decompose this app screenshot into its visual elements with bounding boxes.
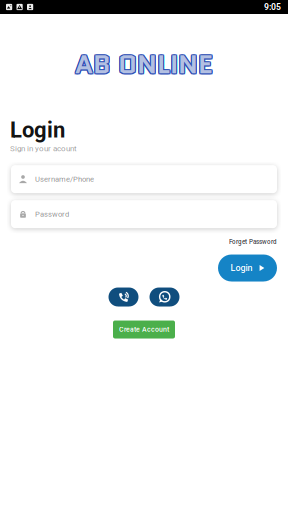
staticText: AB ONLINE bbox=[76, 45, 214, 83]
staticText: AB ONLINE bbox=[75, 46, 213, 84]
staticText: AB ONLINE bbox=[75, 45, 213, 83]
staticText: Login bbox=[10, 117, 65, 143]
button[interactable]: Create Account bbox=[113, 320, 175, 338]
staticText: 9:05 bbox=[264, 2, 281, 12]
staticText: AB ONLINE bbox=[76, 44, 214, 82]
button[interactable]: WhatsApp bbox=[149, 287, 179, 306]
staticText: Create Account bbox=[119, 325, 169, 333]
button[interactable]: Password bbox=[11, 200, 277, 228]
staticText: Username/Phone bbox=[35, 175, 94, 184]
button[interactable]: Forget Password bbox=[226, 236, 280, 247]
button[interactable]: Call bbox=[108, 287, 138, 306]
staticText: AB ONLINE bbox=[74, 44, 212, 82]
button[interactable]: Login bbox=[218, 254, 277, 281]
staticText: Login bbox=[230, 263, 252, 273]
button[interactable]: Username/Phone bbox=[11, 165, 277, 193]
staticText: Forget Password bbox=[229, 238, 277, 245]
staticText: AB ONLINE bbox=[75, 44, 213, 82]
staticText: AB ONLINE bbox=[74, 46, 212, 84]
staticText: Password bbox=[35, 210, 69, 219]
staticText: Sign in your acount bbox=[10, 144, 77, 153]
staticText: AB ONLINE bbox=[74, 45, 212, 83]
staticText: AB ONLINE bbox=[76, 46, 214, 84]
